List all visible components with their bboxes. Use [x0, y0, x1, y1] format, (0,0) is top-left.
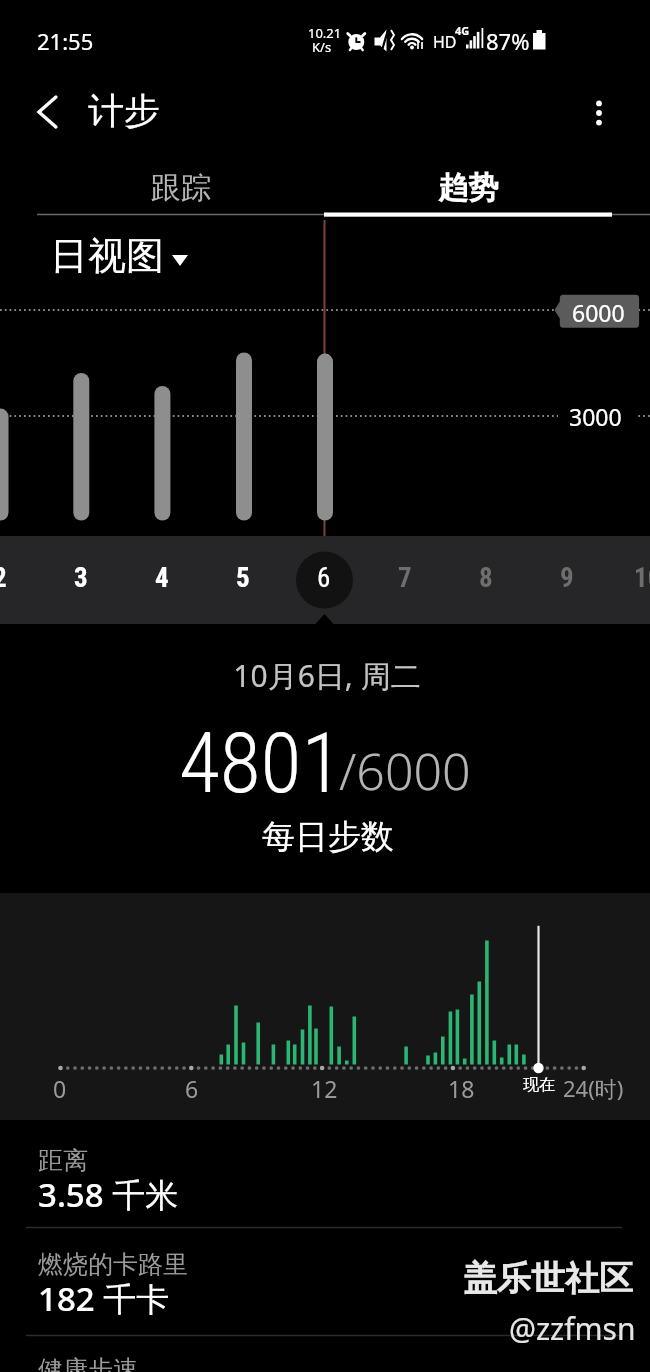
- button[interactable]: 6: [294, 550, 354, 610]
- button[interactable]: 3: [51, 550, 111, 610]
- staticText: HD: [433, 31, 457, 53]
- staticText: 3000: [569, 401, 622, 432]
- button[interactable]: 2: [0, 550, 30, 610]
- button[interactable]: 燃烧的卡路里: [0, 1228, 650, 1335]
- staticText: 跟踪: [151, 169, 211, 207]
- button[interactable]: 4: [132, 550, 192, 610]
- staticText: 趋势: [438, 169, 498, 207]
- button[interactable]: 10: [618, 550, 650, 610]
- staticText: K/s: [312, 38, 332, 56]
- staticText: /6000: [339, 737, 471, 805]
- staticText: 日视图: [50, 232, 164, 280]
- button[interactable]: More options: [575, 88, 623, 136]
- staticText: 3: [74, 562, 88, 594]
- staticText: 0: [53, 1073, 67, 1104]
- staticText: 8: [479, 562, 493, 594]
- button[interactable]: 跟踪: [37, 152, 324, 218]
- staticText: 18: [448, 1073, 475, 1104]
- button[interactable]: 距离: [0, 1120, 650, 1227]
- staticText: 10.21: [308, 24, 342, 42]
- staticText: 4G: [455, 23, 470, 38]
- staticText: 10: [634, 562, 650, 594]
- staticText: 3.58 千米: [38, 1172, 179, 1217]
- button[interactable]: 7: [375, 550, 435, 610]
- staticText: 距离: [38, 1145, 88, 1176]
- button[interactable]: Back: [22, 88, 70, 136]
- button[interactable]: 5: [213, 550, 273, 610]
- staticText: 10月6日, 周二: [127, 655, 527, 696]
- button[interactable]: 8: [456, 550, 516, 610]
- staticText: 盖乐世社区: [463, 1257, 633, 1300]
- staticText: 6: [317, 562, 331, 594]
- staticText: 182 千卡: [38, 1276, 170, 1321]
- button[interactable]: 健康步速: [0, 1336, 650, 1372]
- staticText: 7: [398, 562, 412, 594]
- staticText: 4801: [179, 714, 343, 812]
- staticText: 24(时): [563, 1073, 624, 1103]
- staticText: 6000: [572, 297, 625, 328]
- staticText: 燃烧的卡路里: [38, 1249, 188, 1280]
- staticText: 12: [311, 1073, 338, 1104]
- button[interactable]: 趋势: [324, 152, 612, 218]
- staticText: 21:55: [37, 26, 94, 56]
- staticText: 4: [155, 562, 169, 594]
- staticText: 87%: [486, 26, 530, 56]
- button[interactable]: 日视图: [50, 232, 188, 280]
- staticText: 5: [236, 562, 250, 594]
- staticText: 计步: [88, 88, 160, 133]
- staticText: 2: [0, 562, 7, 594]
- staticText: 每日步数: [128, 816, 528, 858]
- staticText: @zzfmsn: [509, 1308, 636, 1349]
- button[interactable]: 9: [537, 550, 597, 610]
- staticText: 健康步速: [38, 1354, 138, 1372]
- staticText: 现在: [523, 1075, 555, 1095]
- staticText: 6: [185, 1073, 199, 1104]
- staticText: 9: [560, 562, 574, 594]
